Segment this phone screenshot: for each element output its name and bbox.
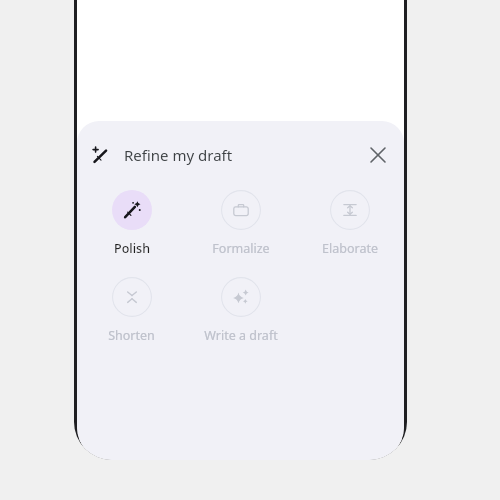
button[interactable]: Polish — [77, 188, 186, 259]
staticText: Polish — [114, 240, 150, 257]
button[interactable]: Close — [359, 137, 397, 173]
staticText: Write a draft — [204, 327, 278, 344]
staticText: Elaborate — [322, 240, 378, 257]
button[interactable]: Refine — [86, 140, 116, 170]
button[interactable]: Formalize — [186, 188, 295, 259]
button[interactable]: Elaborate — [295, 188, 404, 259]
staticText: Shorten — [108, 327, 155, 344]
staticText: Formalize — [212, 240, 270, 257]
button[interactable]: Write a draft — [186, 275, 295, 346]
staticText: Refine my draft — [124, 145, 233, 165]
button[interactable]: Shorten — [77, 275, 186, 346]
